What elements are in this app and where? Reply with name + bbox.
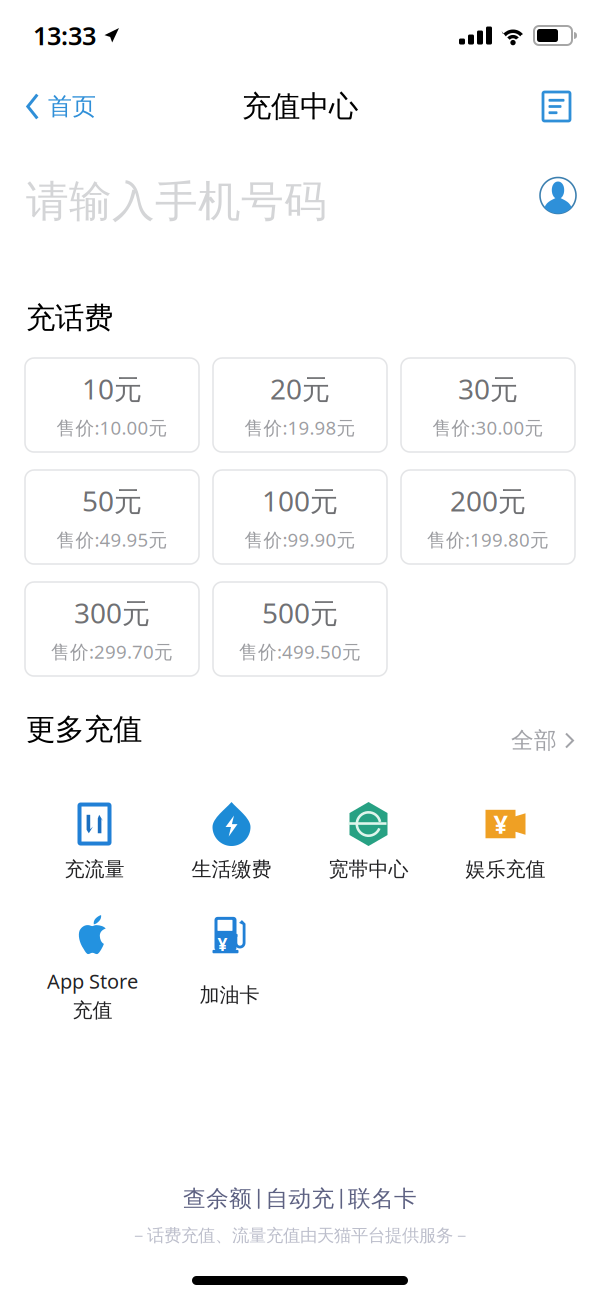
- button[interactable]: 全部: [511, 716, 574, 743]
- staticText: 首页: [48, 92, 96, 121]
- staticText: 售价:30.00元: [432, 415, 543, 440]
- staticText: 充流量: [64, 857, 124, 882]
- staticText: 售价:299.70元: [51, 639, 173, 664]
- staticText: 售价:10.00元: [56, 415, 167, 440]
- staticText: 售价:19.98元: [244, 415, 355, 440]
- staticText: 13:33: [33, 19, 96, 52]
- button[interactable]: 联名卡: [348, 1185, 417, 1213]
- button[interactable]: App Store: [24, 911, 161, 1023]
- staticText: 售价:99.90元: [244, 527, 355, 552]
- staticText: 100元: [262, 482, 338, 519]
- staticText: App Store: [47, 968, 138, 994]
- staticText: 500元: [262, 594, 338, 631]
- button[interactable]: 生活缴费: [163, 800, 300, 882]
- staticText: 宽带中心: [328, 857, 408, 882]
- staticText: 生活缴费: [191, 857, 271, 882]
- staticText: 查余额: [183, 1185, 252, 1213]
- button[interactable]: ¥: [161, 926, 298, 1007]
- button[interactable]: 查余额: [183, 1185, 252, 1213]
- staticText: 请输入手机号码: [26, 175, 327, 228]
- staticText: 更多充值: [26, 711, 142, 747]
- staticText: 售价:199.80元: [427, 527, 549, 552]
- button[interactable]: 30元: [401, 358, 575, 452]
- staticText: 200元: [450, 482, 526, 519]
- staticText: 娱乐充值: [465, 857, 545, 882]
- staticText: －话费充值、流量充值由天猫平台提供服务－: [130, 1225, 470, 1246]
- button[interactable]: 充流量: [26, 800, 163, 882]
- staticText: 10元: [82, 370, 142, 407]
- staticText: 20元: [270, 370, 330, 407]
- staticText: ¥: [493, 807, 507, 841]
- staticText: 充值: [72, 998, 112, 1023]
- button[interactable]: 20元: [213, 358, 387, 452]
- staticText: 充值中心: [242, 88, 358, 124]
- button[interactable]: 100元: [213, 470, 387, 564]
- button[interactable]: 10元: [25, 358, 199, 452]
- staticText: ¥: [217, 933, 227, 956]
- staticText: 售价:49.95元: [56, 527, 167, 552]
- staticText: 30元: [458, 370, 518, 407]
- staticText: 售价:499.50元: [239, 639, 361, 664]
- button[interactable]: 自动充: [265, 1185, 334, 1213]
- staticText: 全部: [511, 727, 557, 754]
- staticText: 自动充: [265, 1185, 334, 1213]
- button[interactable]: 200元: [401, 470, 575, 564]
- button[interactable]: ¥: [437, 800, 574, 882]
- button[interactable]: 300元: [25, 582, 199, 676]
- staticText: 300元: [74, 594, 150, 631]
- button[interactable]: 宽带中心: [300, 800, 437, 882]
- button[interactable]: 50元: [25, 470, 199, 564]
- staticText: 加油卡: [199, 983, 259, 1007]
- staticText: 联名卡: [348, 1185, 417, 1213]
- button[interactable]: 选择联系人: [532, 175, 584, 227]
- button[interactable]: 500元: [213, 582, 387, 676]
- staticText: 充话费: [26, 300, 113, 336]
- button[interactable]: 首页: [0, 71, 116, 142]
- staticText: 50元: [82, 482, 142, 519]
- button[interactable]: 订单记录: [513, 71, 600, 142]
